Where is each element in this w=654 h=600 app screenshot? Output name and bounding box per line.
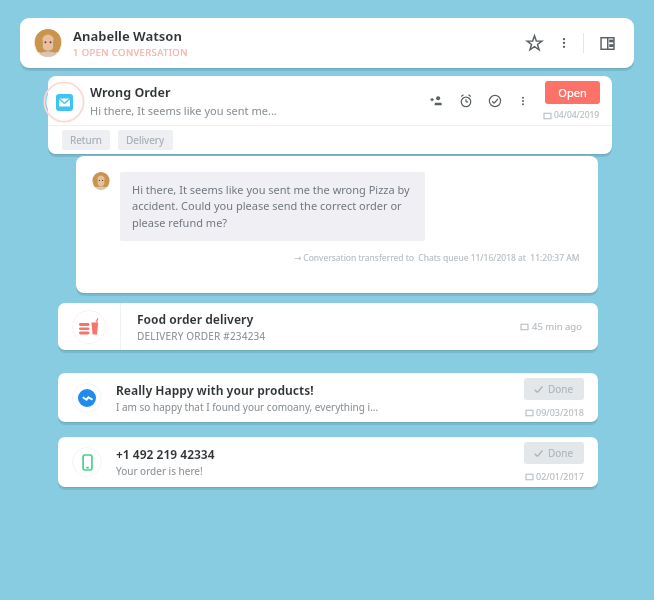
- staticText: DELIVERY ORDER #234234: [137, 329, 266, 343]
- staticText: → Conversation transferred to Chats queu…: [294, 252, 580, 264]
- staticText: I am so happy that I found your comoany,…: [116, 400, 379, 414]
- button[interactable]: Done: [524, 442, 584, 464]
- button[interactable]: Open: [545, 81, 600, 104]
- staticText: Your order is here!: [116, 464, 203, 478]
- staticText: Food order delivery: [137, 311, 254, 327]
- staticText: Return: [70, 133, 102, 147]
- staticText: Open: [558, 85, 587, 100]
- staticText: Done: [548, 382, 574, 396]
- button[interactable]: More options: [553, 32, 575, 54]
- button[interactable]: Toggle side panel: [594, 30, 620, 56]
- button[interactable]: Delivery: [118, 130, 173, 150]
- staticText: Anabelle Watson: [73, 27, 182, 45]
- button[interactable]: Done: [524, 378, 584, 400]
- button[interactable]: Favorite: [521, 30, 547, 56]
- button[interactable]: Anabelle Watson: [20, 18, 634, 68]
- staticText: 1 OPEN CONVERSATION: [73, 46, 188, 59]
- staticText: 04/04/2019: [554, 109, 600, 121]
- button[interactable]: Snooze: [456, 91, 476, 111]
- staticText: Hi there, It seems like you sent me...: [90, 103, 277, 118]
- staticText: Done: [548, 446, 574, 460]
- button[interactable]: Resolve: [485, 91, 505, 111]
- staticText: Delivery: [126, 133, 165, 147]
- button[interactable]: More actions: [514, 92, 532, 110]
- staticText: +1 492 219 42334: [116, 446, 215, 462]
- staticText: 45 min ago: [532, 320, 582, 333]
- button[interactable]: Hi there, It seems like you sent me the …: [120, 172, 425, 241]
- staticText: Hi there, It seems like you sent me the …: [132, 182, 413, 231]
- button[interactable]: Return: [62, 130, 110, 150]
- button[interactable]: +1 492 219 42334: [58, 437, 598, 487]
- button[interactable]: Wrong Order: [48, 76, 612, 125]
- staticText: Wrong Order: [90, 84, 171, 101]
- staticText: 02/01/2017: [536, 470, 584, 482]
- staticText: 09/03/2018: [536, 406, 584, 418]
- button[interactable]: Really Happy with your products!: [58, 373, 598, 422]
- staticText: Really Happy with your products!: [116, 382, 314, 398]
- button[interactable]: Food order delivery: [58, 303, 598, 350]
- button[interactable]: Assign: [427, 91, 447, 111]
